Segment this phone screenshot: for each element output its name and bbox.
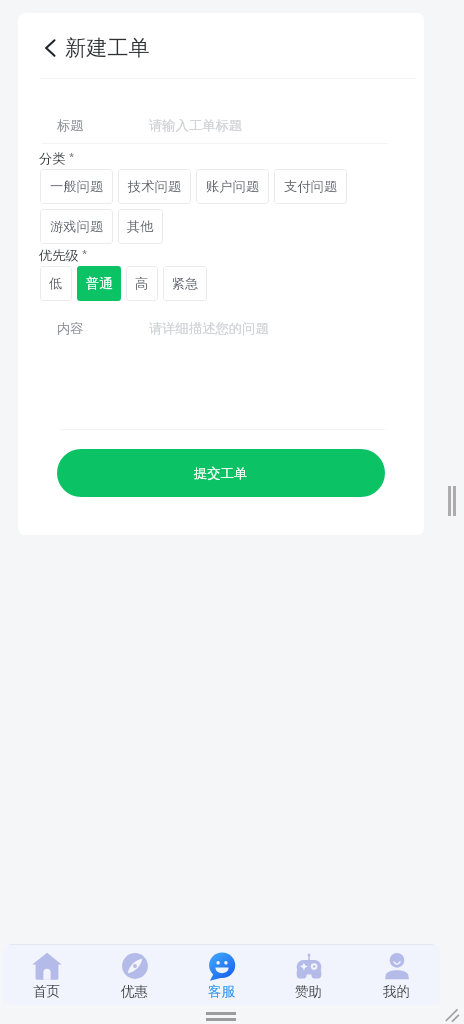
button[interactable]: 普通 [77, 266, 121, 301]
button[interactable]: 首页 [3, 944, 90, 1005]
button[interactable]: 返回 [33, 31, 67, 65]
button[interactable]: 高 [126, 266, 158, 301]
staticText: 优惠 [121, 983, 148, 1000]
button[interactable]: 低 [40, 266, 72, 301]
staticText: 游戏问题 [50, 218, 104, 235]
staticText: 请输入工单标题 [149, 117, 243, 134]
staticText: * [69, 150, 75, 163]
staticText: 内容 [57, 320, 84, 337]
staticText: 分类 [39, 150, 66, 167]
staticText: 低 [49, 275, 63, 292]
button[interactable]: 一般问题 [40, 169, 113, 204]
staticText: 新建工单 [65, 35, 150, 62]
staticText: 技术问题 [128, 178, 182, 195]
button[interactable]: 支付问题 [274, 169, 347, 204]
button[interactable]: 赞助 [265, 944, 352, 1005]
staticText: * [82, 247, 88, 260]
staticText: 高 [135, 275, 149, 292]
staticText: 一般问题 [50, 178, 104, 195]
button[interactable]: 账户问题 [196, 169, 269, 204]
staticText: 优先级 [39, 247, 79, 264]
button[interactable]: 提交工单 [57, 449, 385, 497]
button[interactable]: 技术问题 [118, 169, 191, 204]
button[interactable]: 紧急 [163, 266, 207, 301]
button[interactable]: 客服 [178, 944, 265, 1005]
staticText: 紧急 [172, 275, 199, 292]
button[interactable]: 优惠 [91, 944, 178, 1005]
staticText: 请详细描述您的问题 [149, 320, 269, 337]
staticText: 我的 [383, 983, 410, 1000]
button[interactable]: 我的 [353, 944, 440, 1005]
staticText: 普通 [86, 275, 113, 292]
button[interactable]: 游戏问题 [40, 209, 113, 244]
staticText: 其他 [127, 218, 154, 235]
button[interactable]: 其他 [118, 209, 163, 244]
staticText: 客服 [208, 983, 235, 1000]
staticText: 首页 [33, 983, 60, 1000]
staticText: 标题 [57, 117, 84, 134]
staticText: 赞助 [295, 983, 322, 1000]
staticText: 支付问题 [284, 178, 338, 195]
staticText: 账户问题 [206, 178, 260, 195]
staticText: 提交工单 [194, 465, 248, 482]
